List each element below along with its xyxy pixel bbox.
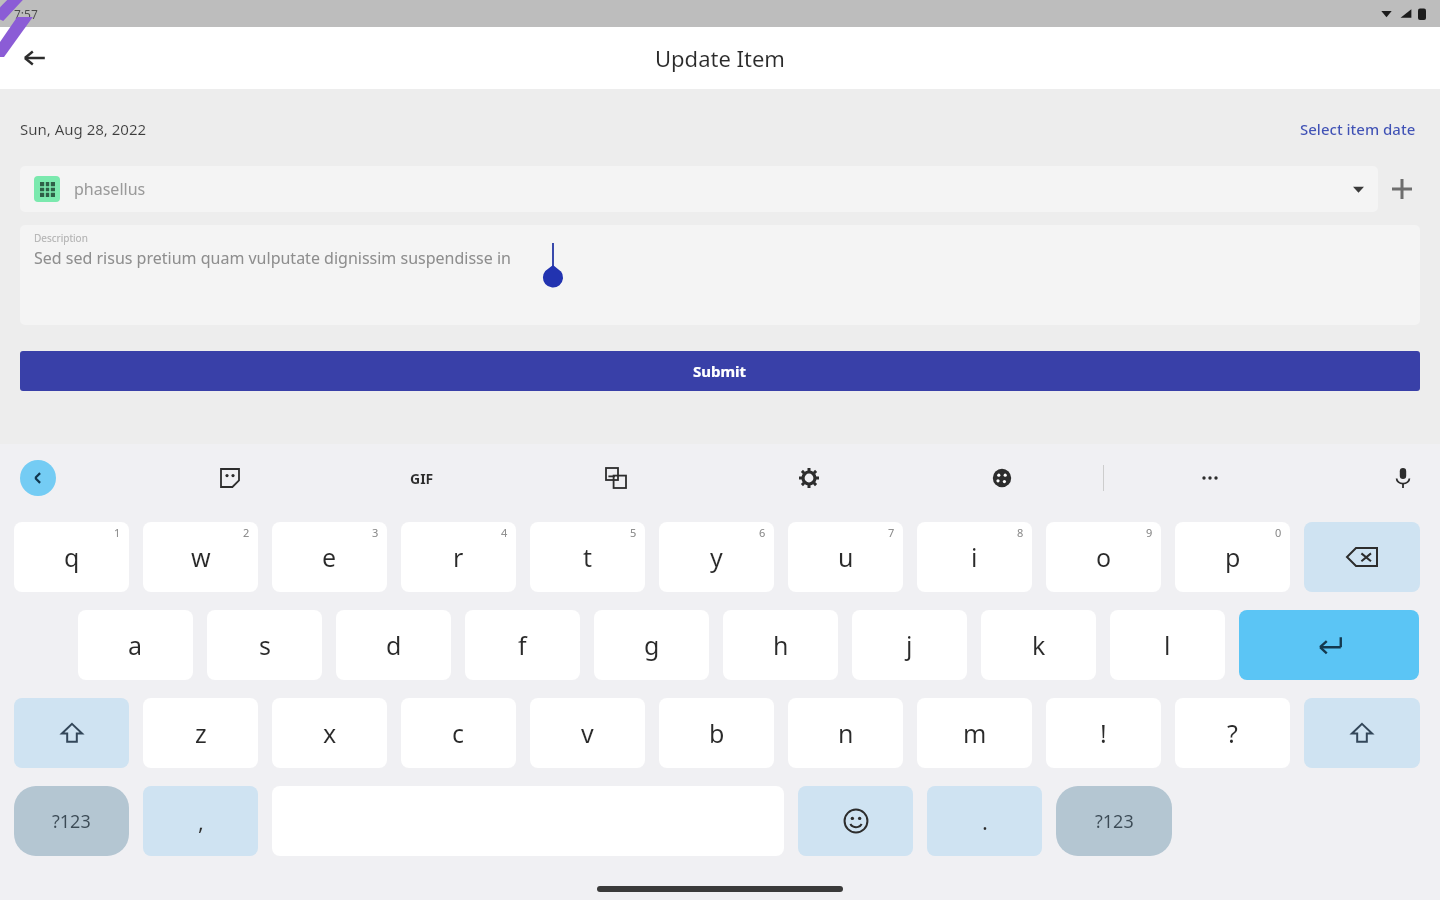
staticText: Sun, Aug 28, 2022 bbox=[20, 119, 147, 139]
button[interactable]: y bbox=[659, 522, 774, 592]
button[interactable]: ?123 bbox=[1056, 786, 1172, 856]
button[interactable]: GIF bbox=[400, 456, 444, 500]
staticText: Sed sed risus pretium quam vulputate dig… bbox=[34, 247, 511, 269]
staticText: 8 bbox=[1017, 525, 1024, 540]
button[interactable]: u bbox=[788, 522, 903, 592]
button[interactable]: Emoji bbox=[798, 786, 913, 856]
staticText: 1 bbox=[114, 525, 121, 540]
staticText: y bbox=[710, 540, 723, 574]
staticText: w bbox=[191, 540, 211, 574]
button[interactable]: k bbox=[981, 610, 1096, 680]
button[interactable]: Shift bbox=[14, 698, 129, 768]
button[interactable]: q bbox=[14, 522, 129, 592]
staticText: u bbox=[838, 540, 854, 574]
button[interactable]: o bbox=[1046, 522, 1161, 592]
button[interactable]: z bbox=[143, 698, 258, 768]
button[interactable]: Stickers bbox=[208, 456, 252, 500]
staticText: 2 bbox=[243, 525, 250, 540]
staticText: t bbox=[583, 540, 593, 574]
staticText: m bbox=[963, 716, 987, 750]
staticText: 6 bbox=[759, 525, 766, 540]
staticText: l bbox=[1164, 628, 1171, 662]
button[interactable]: d bbox=[336, 610, 451, 680]
staticText: 4 bbox=[501, 525, 508, 540]
staticText: , bbox=[198, 806, 204, 836]
staticText: Description bbox=[34, 231, 88, 245]
staticText: z bbox=[195, 716, 207, 750]
button[interactable]: t bbox=[530, 522, 645, 592]
staticText: 0 bbox=[1275, 525, 1282, 540]
button[interactable]: Description bbox=[20, 225, 1420, 325]
staticText: phasellus bbox=[74, 178, 146, 200]
button[interactable]: w bbox=[143, 522, 258, 592]
button[interactable]: p bbox=[1175, 522, 1290, 592]
button[interactable]: Expand toolbar bbox=[20, 460, 56, 496]
staticText: 7 bbox=[888, 525, 895, 540]
staticText: s bbox=[259, 628, 271, 662]
button[interactable]: m bbox=[917, 698, 1032, 768]
staticText: c bbox=[452, 716, 465, 750]
button[interactable]: l bbox=[1110, 610, 1225, 680]
button[interactable]: c bbox=[401, 698, 516, 768]
staticText: n bbox=[838, 716, 854, 750]
staticText: r bbox=[453, 540, 464, 574]
button[interactable]: phasellus bbox=[20, 166, 1378, 212]
button[interactable]: ! bbox=[1046, 698, 1161, 768]
button[interactable]: Backspace bbox=[1304, 522, 1420, 592]
staticText: ?123 bbox=[52, 809, 91, 834]
button[interactable]: r bbox=[401, 522, 516, 592]
button[interactable]: Select item date bbox=[1296, 115, 1420, 143]
button[interactable]: f bbox=[465, 610, 580, 680]
button[interactable]: v bbox=[530, 698, 645, 768]
staticText: k bbox=[1032, 628, 1046, 662]
button[interactable]: a bbox=[78, 610, 193, 680]
button[interactable]: ? bbox=[1175, 698, 1290, 768]
staticText: v bbox=[581, 716, 594, 750]
button[interactable]: More options bbox=[1188, 456, 1232, 500]
staticText: x bbox=[323, 716, 337, 750]
staticText: ?123 bbox=[1095, 809, 1134, 834]
staticText: d bbox=[386, 628, 402, 662]
button[interactable]: g bbox=[594, 610, 709, 680]
button[interactable]: Settings bbox=[787, 456, 831, 500]
staticText: j bbox=[906, 628, 913, 662]
staticText: 9 bbox=[1146, 525, 1153, 540]
button[interactable]: e bbox=[272, 522, 387, 592]
button[interactable]: ?123 bbox=[14, 786, 129, 856]
button[interactable]: Themes bbox=[980, 456, 1024, 500]
button[interactable]: Voice input bbox=[1381, 456, 1425, 500]
staticText: . bbox=[982, 806, 988, 836]
button[interactable]: Enter bbox=[1239, 610, 1419, 680]
staticText: a bbox=[128, 628, 143, 662]
staticText: 3 bbox=[372, 525, 379, 540]
staticText: Submit bbox=[693, 361, 747, 381]
button[interactable]: Translate bbox=[594, 456, 638, 500]
staticText: 7:57 bbox=[14, 6, 38, 22]
button[interactable]: Add item bbox=[1378, 165, 1426, 213]
staticText: g bbox=[644, 628, 660, 662]
button[interactable]: Shift bbox=[1304, 698, 1420, 768]
button[interactable]: x bbox=[272, 698, 387, 768]
staticText: f bbox=[518, 628, 527, 662]
button[interactable]: Submit bbox=[20, 351, 1420, 391]
button[interactable]: j bbox=[852, 610, 967, 680]
staticText: ? bbox=[1227, 716, 1238, 750]
button[interactable]: h bbox=[723, 610, 838, 680]
button[interactable]: s bbox=[207, 610, 322, 680]
staticText: Select item date bbox=[1300, 119, 1416, 139]
button[interactable]: b bbox=[659, 698, 774, 768]
button[interactable]: . bbox=[927, 786, 1042, 856]
button[interactable]: , bbox=[143, 786, 258, 856]
staticText: b bbox=[709, 716, 725, 750]
staticText: q bbox=[64, 540, 80, 574]
button[interactable]: i bbox=[917, 522, 1032, 592]
staticText: 5 bbox=[630, 525, 637, 540]
button[interactable]: Back bbox=[10, 34, 58, 82]
button[interactable]: n bbox=[788, 698, 903, 768]
staticText: e bbox=[322, 540, 337, 574]
staticText: p bbox=[1225, 540, 1241, 574]
staticText: Update Item bbox=[655, 43, 785, 73]
staticText: GIF bbox=[410, 469, 434, 488]
staticText: i bbox=[971, 540, 978, 574]
